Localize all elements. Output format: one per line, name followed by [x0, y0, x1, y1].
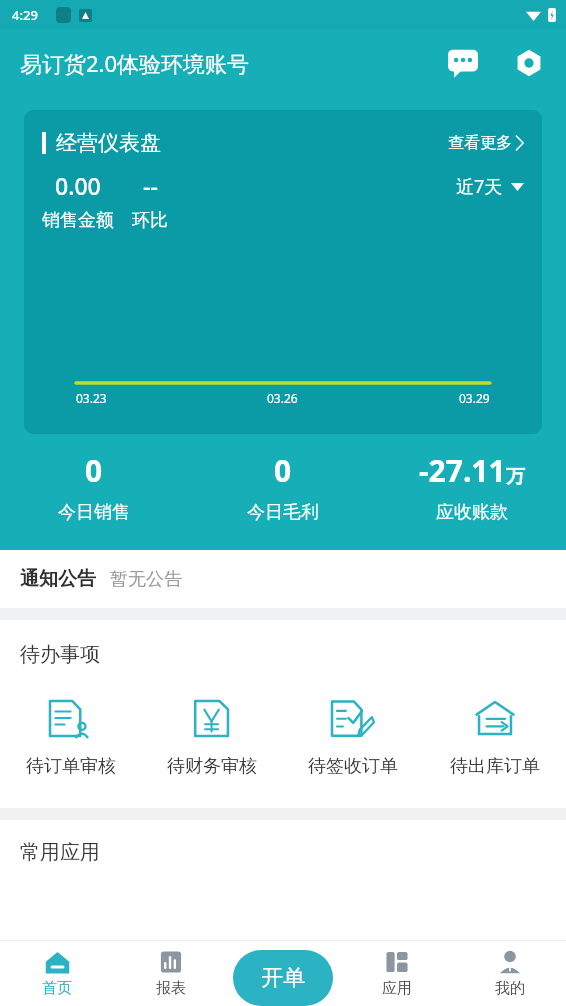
staticText: -- — [143, 170, 158, 201]
staticText: 今日毛利 — [247, 501, 319, 524]
staticText: 03.26 — [267, 390, 298, 406]
staticText: -27.11 — [419, 450, 506, 491]
staticText: 应收账款 — [436, 501, 508, 524]
staticText: 待办事项 — [20, 642, 100, 667]
staticText: 0 — [274, 450, 292, 491]
staticText: 经营仪表盘 — [56, 130, 161, 156]
staticText: 环比 — [132, 209, 168, 232]
button[interactable]: 开单 — [233, 950, 333, 1006]
button[interactable]: 待财务审核 — [141, 693, 282, 780]
staticText: 开单 — [261, 964, 305, 992]
button[interactable]: -27.11 — [377, 450, 566, 524]
staticText: 首页 — [42, 979, 72, 998]
staticText: 通知公告 — [20, 567, 96, 591]
button[interactable]: 近7天 — [456, 174, 524, 199]
button[interactable]: Messages — [440, 40, 486, 86]
staticText: 0.00 — [55, 170, 101, 201]
button[interactable]: Settings — [506, 40, 552, 86]
button[interactable]: 0 — [188, 450, 377, 524]
staticText: 待出库订单 — [450, 755, 540, 778]
button[interactable]: 待出库订单 — [424, 693, 566, 780]
staticText: 暂无公告 — [110, 568, 182, 591]
button[interactable]: 报表 — [114, 940, 227, 1006]
button[interactable]: 查看更多 — [448, 133, 524, 153]
staticText: 0 — [85, 450, 103, 491]
staticText: 常用应用 — [20, 840, 100, 865]
staticText: 03.29 — [459, 390, 490, 406]
button[interactable]: 首页 — [0, 940, 114, 1006]
staticText: 今日销售 — [58, 501, 130, 524]
staticText: 报表 — [156, 979, 186, 998]
staticText: 4:29 — [12, 6, 38, 24]
staticText: 待签收订单 — [308, 755, 398, 778]
staticText: 待订单审核 — [26, 755, 116, 778]
staticText: 待财务审核 — [167, 755, 257, 778]
staticText: 销售金额 — [42, 209, 114, 232]
staticText: 万 — [506, 465, 525, 489]
staticText: 应用 — [382, 979, 412, 998]
button[interactable]: 0 — [0, 450, 188, 524]
button[interactable]: 待签收订单 — [282, 693, 424, 780]
button[interactable]: 通知公告 — [0, 550, 566, 608]
button[interactable]: 经营仪表盘 — [24, 110, 542, 434]
button[interactable]: 待订单审核 — [0, 693, 141, 780]
staticText: 03.23 — [76, 390, 107, 406]
button[interactable]: 我的 — [453, 940, 566, 1006]
button[interactable]: 应用 — [340, 940, 453, 1006]
staticText: 近7天 — [456, 174, 503, 199]
staticText: 查看更多 — [448, 133, 512, 153]
staticText: 我的 — [495, 979, 525, 998]
staticText: 易订货2.0体验环境账号 — [20, 48, 250, 78]
